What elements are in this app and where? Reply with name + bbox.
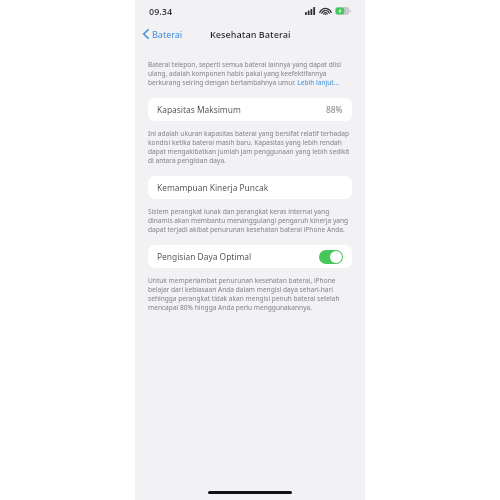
staticText: 88% [326, 104, 343, 115]
other: Back [143, 29, 149, 39]
button[interactable]: Kemampuan Kinerja Puncak [148, 176, 352, 199]
staticText: Sistem perangkat lunak dan perangkat ker… [148, 207, 352, 234]
staticText: Baterai [152, 28, 183, 40]
staticText: Untuk memperlambat penurunan kesehatan b… [148, 276, 352, 312]
button[interactable]: Pengisian Daya Optimal toggle [319, 250, 343, 264]
staticText: Kemampuan Kinerja Puncak [157, 182, 269, 193]
staticText: 09.34 [149, 5, 173, 17]
button[interactable]: Kapasitas Maksimum [148, 98, 352, 121]
staticText: Kapasitas Maksimum [157, 104, 241, 115]
staticText: Pengisian Daya Optimal [157, 251, 252, 262]
staticText: Kesehatan Baterai [210, 28, 291, 40]
staticText: Baterai telepon, seperti semua baterai l… [148, 60, 352, 87]
button[interactable]: Back [135, 25, 191, 43]
button[interactable]: Pengisian Daya Optimal [148, 245, 352, 268]
staticText: Ini adalah ukuran kapasitas baterai yang… [148, 129, 352, 165]
